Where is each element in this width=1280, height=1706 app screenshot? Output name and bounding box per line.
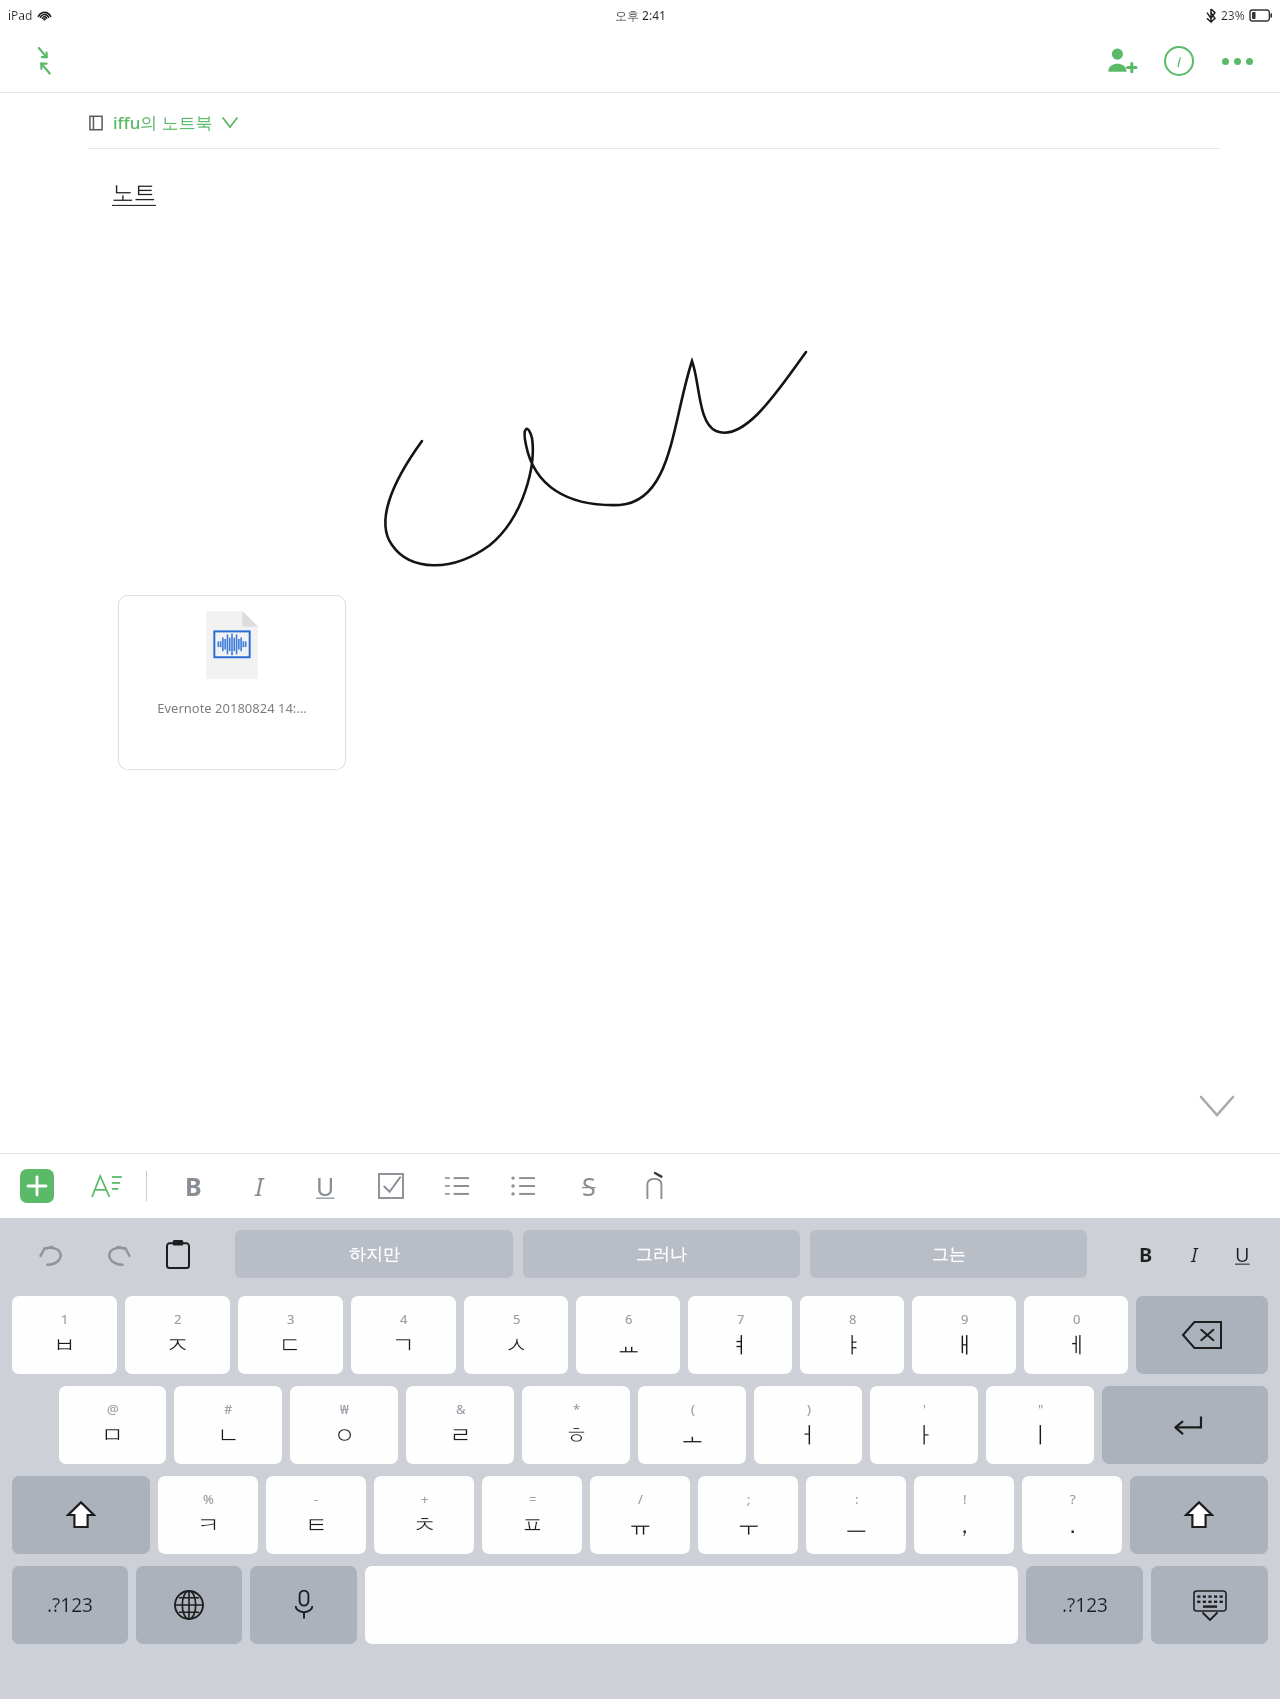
button[interactable]: Dismiss keyboard — [1151, 1566, 1268, 1644]
button[interactable]: Share note — [1092, 32, 1150, 90]
button[interactable]: Numbers — [1026, 1566, 1143, 1644]
button[interactable]: " — [986, 1386, 1094, 1464]
button[interactable]: : — [806, 1476, 906, 1554]
staticText: 4 — [400, 1310, 408, 1328]
staticText: 그러나 — [636, 1244, 687, 1265]
button[interactable]: 8 — [800, 1296, 904, 1374]
button[interactable]: ? — [1022, 1476, 1122, 1554]
button[interactable]: Underline — [305, 1166, 345, 1206]
button[interactable]: Undo — [28, 1228, 80, 1280]
button[interactable]: ' — [870, 1386, 978, 1464]
staticText: 23% — [1221, 7, 1245, 23]
button[interactable]: 7 — [688, 1296, 792, 1374]
button[interactable]: ! — [914, 1476, 1014, 1554]
button[interactable]: Italic — [239, 1166, 279, 1206]
button[interactable]: Change language — [136, 1566, 242, 1644]
button[interactable]: 9 — [912, 1296, 1016, 1374]
button[interactable]: & — [406, 1386, 514, 1464]
staticText: ㅜ — [737, 1511, 760, 1540]
button[interactable]: 4 — [351, 1296, 456, 1374]
staticText: ㄷ — [279, 1331, 302, 1360]
button[interactable]: I — [1170, 1230, 1218, 1278]
staticText: ( — [691, 1400, 695, 1418]
button[interactable]: 3 — [238, 1296, 343, 1374]
button[interactable]: ( — [638, 1386, 746, 1464]
button[interactable]: 1 — [12, 1296, 117, 1374]
button[interactable]: = — [482, 1476, 582, 1554]
button[interactable]: Note info — [1150, 32, 1208, 90]
button[interactable]: ; — [698, 1476, 798, 1554]
staticText: I — [255, 1169, 264, 1203]
staticText: ㅛ — [617, 1331, 640, 1360]
button[interactable]: 6 — [576, 1296, 680, 1374]
staticText: 하지만 — [349, 1244, 400, 1265]
staticText: * — [573, 1400, 581, 1418]
staticText: " — [1038, 1400, 1044, 1418]
button[interactable]: Paste — [152, 1228, 204, 1280]
button[interactable]: / — [590, 1476, 690, 1554]
button[interactable]: 그는 — [810, 1230, 1087, 1278]
staticText: 1 — [61, 1310, 69, 1328]
staticText: ㅅ — [505, 1331, 528, 1360]
staticText: ㅌ — [305, 1511, 328, 1540]
button[interactable]: ₩ — [290, 1386, 398, 1464]
button[interactable]: Backspace — [1136, 1296, 1268, 1374]
button[interactable]: Shift — [1130, 1476, 1268, 1554]
button[interactable]: Highlighter — [635, 1166, 675, 1206]
button[interactable]: @ — [59, 1386, 166, 1464]
staticText: ㅏ — [913, 1421, 936, 1450]
staticText: 5 — [513, 1310, 521, 1328]
button[interactable]: Return — [1102, 1386, 1268, 1464]
button[interactable]: 그러나 — [523, 1230, 800, 1278]
button[interactable]: Bulleted list — [503, 1166, 543, 1206]
button[interactable]: Text style — [84, 1166, 124, 1206]
button[interactable]: Collapse — [22, 39, 66, 83]
button[interactable]: Evernote 20180824 14:... — [118, 595, 346, 770]
staticText: 오후 2:41 — [615, 7, 666, 23]
button[interactable]: Shift — [12, 1476, 150, 1554]
button[interactable]: Hide keyboard — [1190, 1079, 1244, 1133]
button[interactable]: # — [174, 1386, 282, 1464]
staticText: ㅗ — [681, 1421, 704, 1450]
staticText: B — [1139, 1241, 1153, 1268]
staticText: 2 — [174, 1310, 182, 1328]
staticText: ? — [1070, 1490, 1076, 1508]
button[interactable]: Numbers — [12, 1566, 128, 1644]
button[interactable]: Add attachment — [20, 1169, 54, 1203]
staticText: ㅋ — [197, 1511, 220, 1540]
button[interactable]: Redo — [90, 1228, 142, 1280]
staticText: ₩ — [340, 1400, 349, 1418]
button[interactable]: Dictation — [250, 1566, 357, 1644]
button[interactable]: % — [158, 1476, 258, 1554]
button[interactable]: 5 — [464, 1296, 568, 1374]
button[interactable]: Checkbox — [371, 1166, 411, 1206]
button[interactable]: 하지만 — [235, 1230, 513, 1278]
staticText: .?123 — [47, 1592, 93, 1618]
button[interactable]: - — [266, 1476, 366, 1554]
button[interactable]: iffu의 노트북 — [88, 111, 237, 134]
staticText: U — [316, 1169, 335, 1203]
button[interactable]: 2 — [125, 1296, 230, 1374]
button[interactable]: B — [1122, 1230, 1170, 1278]
staticText: ㅠ — [629, 1511, 652, 1540]
staticText: .?123 — [1062, 1592, 1108, 1618]
staticText: I — [1191, 1241, 1198, 1268]
button[interactable]: More options — [1208, 32, 1266, 90]
staticText: ㅎ — [565, 1421, 588, 1450]
staticText: B — [185, 1169, 202, 1203]
staticText: 노트 — [112, 179, 156, 207]
staticText: = — [529, 1490, 537, 1508]
button[interactable]: U — [1218, 1230, 1266, 1278]
staticText: # — [224, 1400, 233, 1418]
button[interactable]: ) — [754, 1386, 862, 1464]
staticText: ' — [923, 1400, 926, 1418]
button[interactable]: 0 — [1024, 1296, 1128, 1374]
button[interactable]: + — [374, 1476, 474, 1554]
button[interactable]: Strikethrough — [569, 1166, 609, 1206]
button[interactable]: Numbered list — [437, 1166, 477, 1206]
staticText: 9 — [961, 1310, 969, 1328]
button[interactable]: Bold — [173, 1166, 213, 1206]
button[interactable]: * — [522, 1386, 630, 1464]
staticText: iffu의 노트북 — [113, 111, 213, 134]
